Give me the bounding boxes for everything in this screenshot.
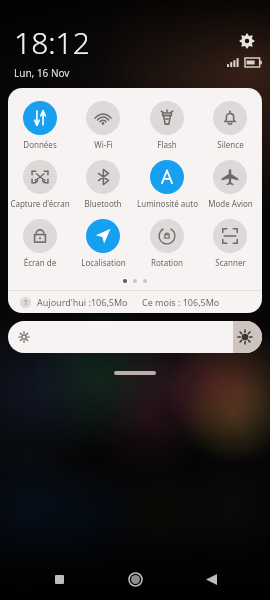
staticText: Silence [217, 139, 244, 150]
staticText: Données Mobiles [9, 139, 71, 150]
button[interactable]: ? [8, 291, 262, 313]
button[interactable]: Settings [234, 28, 260, 54]
button[interactable]: Recents [42, 562, 76, 596]
staticText: Flash [157, 139, 177, 150]
staticText: Rotation [151, 257, 183, 268]
button[interactable]: Silence [199, 96, 261, 155]
button[interactable]: Capture d'écran [9, 155, 71, 214]
staticText: Localisation [81, 257, 126, 268]
button[interactable]: Écran de verrouillage [9, 214, 71, 273]
button[interactable]: Localisation [72, 214, 134, 273]
button[interactable]: Luminosité auto [136, 155, 198, 214]
staticText: Aujourd'hui :106,5Mo [37, 296, 128, 308]
staticText: Capture d'écran [10, 198, 70, 209]
button[interactable]: Scanner [199, 214, 261, 273]
button[interactable]: Rotation [136, 214, 198, 273]
button[interactable]: Brightness [8, 321, 262, 353]
staticText: Bluetooth [84, 198, 122, 209]
staticText: 18:12 [14, 22, 90, 63]
button[interactable]: Flash [136, 96, 198, 155]
staticText: Écran de verrouillage [9, 257, 71, 268]
staticText: Ce mois : 106,5Mo [142, 296, 220, 308]
button[interactable]: Home [118, 562, 152, 596]
button[interactable]: Back [194, 562, 228, 596]
staticText: Luminosité auto [137, 198, 198, 209]
staticText: Wi-Fi [94, 139, 113, 150]
staticText: Mode Avion [208, 198, 253, 209]
button[interactable]: Mode Avion [199, 155, 261, 214]
staticText: Scanner [215, 257, 246, 268]
button[interactable]: Données Mobiles [9, 96, 71, 155]
button[interactable]: Bluetooth [72, 155, 134, 214]
staticText: ? [24, 298, 28, 308]
staticText: Lun, 16 Nov [14, 66, 70, 78]
button[interactable]: Wi-Fi [72, 96, 134, 155]
